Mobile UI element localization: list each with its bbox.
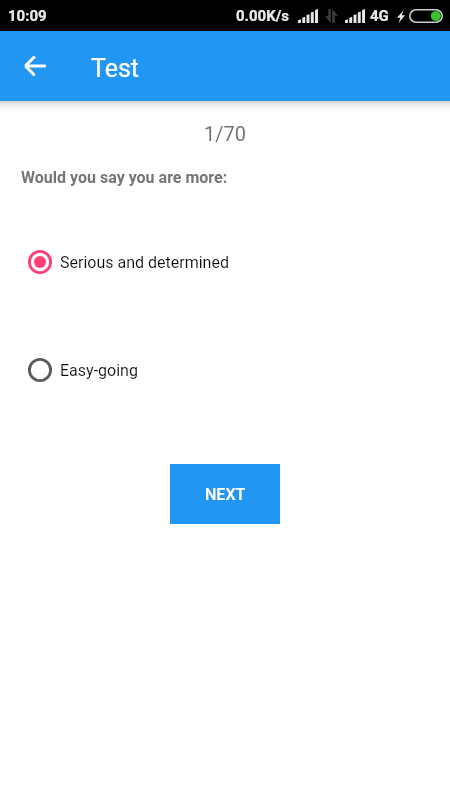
staticText: Test <box>91 54 140 83</box>
button[interactable]: Easy-going <box>0 346 450 394</box>
staticText: 10:09 <box>8 7 47 25</box>
staticText: NEXT <box>205 485 246 504</box>
button[interactable]: NEXT <box>170 464 280 524</box>
button[interactable]: Navigate up <box>11 42 59 90</box>
staticText: Serious and determined <box>60 253 229 272</box>
staticText: Would you say you are more: <box>21 168 228 187</box>
staticText: Easy-going <box>60 361 138 380</box>
staticText: 0.00K/s <box>236 7 290 25</box>
button[interactable]: Serious and determined <box>0 238 450 286</box>
staticText: 4G <box>370 7 389 25</box>
staticText: 1/70 <box>0 122 450 145</box>
